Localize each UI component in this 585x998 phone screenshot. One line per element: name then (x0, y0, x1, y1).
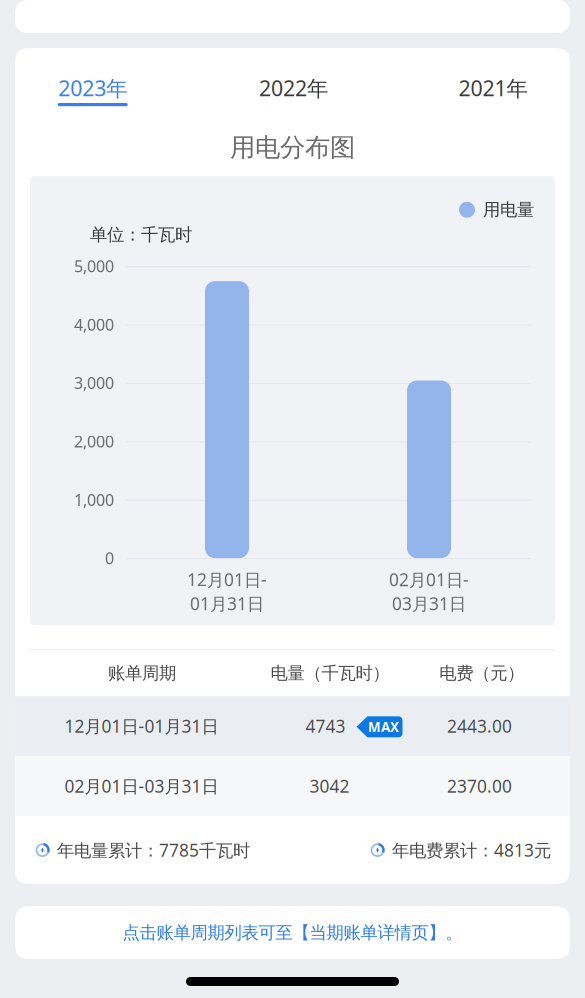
staticText: 点击账单周期列表可至【当期账单详情页】。 (122, 922, 462, 943)
staticText: 用电分布图 (230, 132, 355, 163)
staticText: 2370.00 (447, 775, 512, 798)
staticText: 02月01日- (389, 568, 469, 591)
staticText: 1,000 (74, 489, 114, 510)
staticText: 电费（元） (439, 662, 524, 684)
staticText: 用电量 (483, 199, 534, 220)
button[interactable]: 2022年 (233, 71, 353, 111)
button[interactable]: 2023年 (33, 71, 153, 111)
staticText: 0 (105, 547, 114, 569)
staticText: 账单周期 (108, 662, 176, 684)
staticText: 01月31日 (190, 592, 264, 615)
staticText: 单位：千瓦时 (90, 224, 192, 245)
staticText: 电量（千瓦时） (270, 662, 389, 684)
staticText: 3042 (309, 775, 349, 798)
staticText: 2443.00 (447, 715, 512, 738)
staticText: 2023年 (58, 74, 127, 102)
staticText: 12月01日- (187, 568, 267, 591)
staticText: 2021年 (458, 74, 527, 102)
staticText: 3,000 (74, 372, 114, 393)
staticText: 4743 (305, 715, 345, 738)
button[interactable]: 02月01日-03月31日 (15, 756, 570, 816)
staticText: 年电量累计：7785千瓦时 (57, 839, 250, 862)
staticText: 12月01日-01月31日 (64, 715, 218, 738)
staticText: 2022年 (259, 74, 328, 102)
staticText: 年电费累计：4813元 (392, 839, 551, 862)
button[interactable]: 12月01日-01月31日 (15, 696, 570, 756)
staticText: 03月31日 (392, 592, 466, 615)
button[interactable]: 点击账单周期列表可至【当期账单详情页】。 (15, 906, 570, 959)
staticText: 2,000 (74, 431, 114, 452)
staticText: MAX (368, 718, 399, 736)
staticText: 02月01日-03月31日 (64, 775, 218, 798)
staticText: 5,000 (74, 255, 114, 277)
staticText: 4,000 (74, 314, 114, 335)
button[interactable]: 2021年 (433, 71, 553, 111)
